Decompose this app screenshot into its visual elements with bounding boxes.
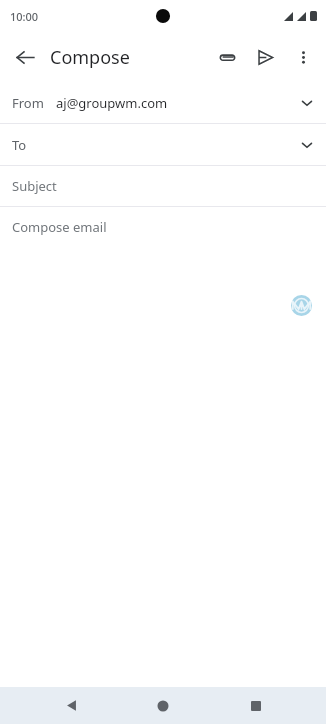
button[interactable]: From <box>0 82 326 123</box>
button[interactable]: Subject <box>0 166 326 206</box>
staticText: 10:00 <box>10 9 39 24</box>
button[interactable]: Navigate up <box>6 38 44 76</box>
staticText: Subject <box>12 177 57 195</box>
staticText: Compose <box>50 45 130 70</box>
button[interactable]: More options <box>284 38 322 76</box>
other: Moto signature <box>291 295 312 316</box>
staticText: From <box>12 94 44 112</box>
button[interactable]: Attach file <box>208 38 246 76</box>
button[interactable]: Compose email <box>0 207 326 247</box>
button[interactable]: Back <box>49 687 93 724</box>
staticText: aj@groupwm.com <box>56 94 168 112</box>
staticText: Compose email <box>12 218 107 236</box>
button[interactable]: Send <box>246 38 284 76</box>
button[interactable]: Home <box>141 687 185 724</box>
staticText: To <box>12 136 27 154</box>
button[interactable]: To <box>0 124 326 165</box>
button[interactable]: Recent apps <box>234 687 278 724</box>
